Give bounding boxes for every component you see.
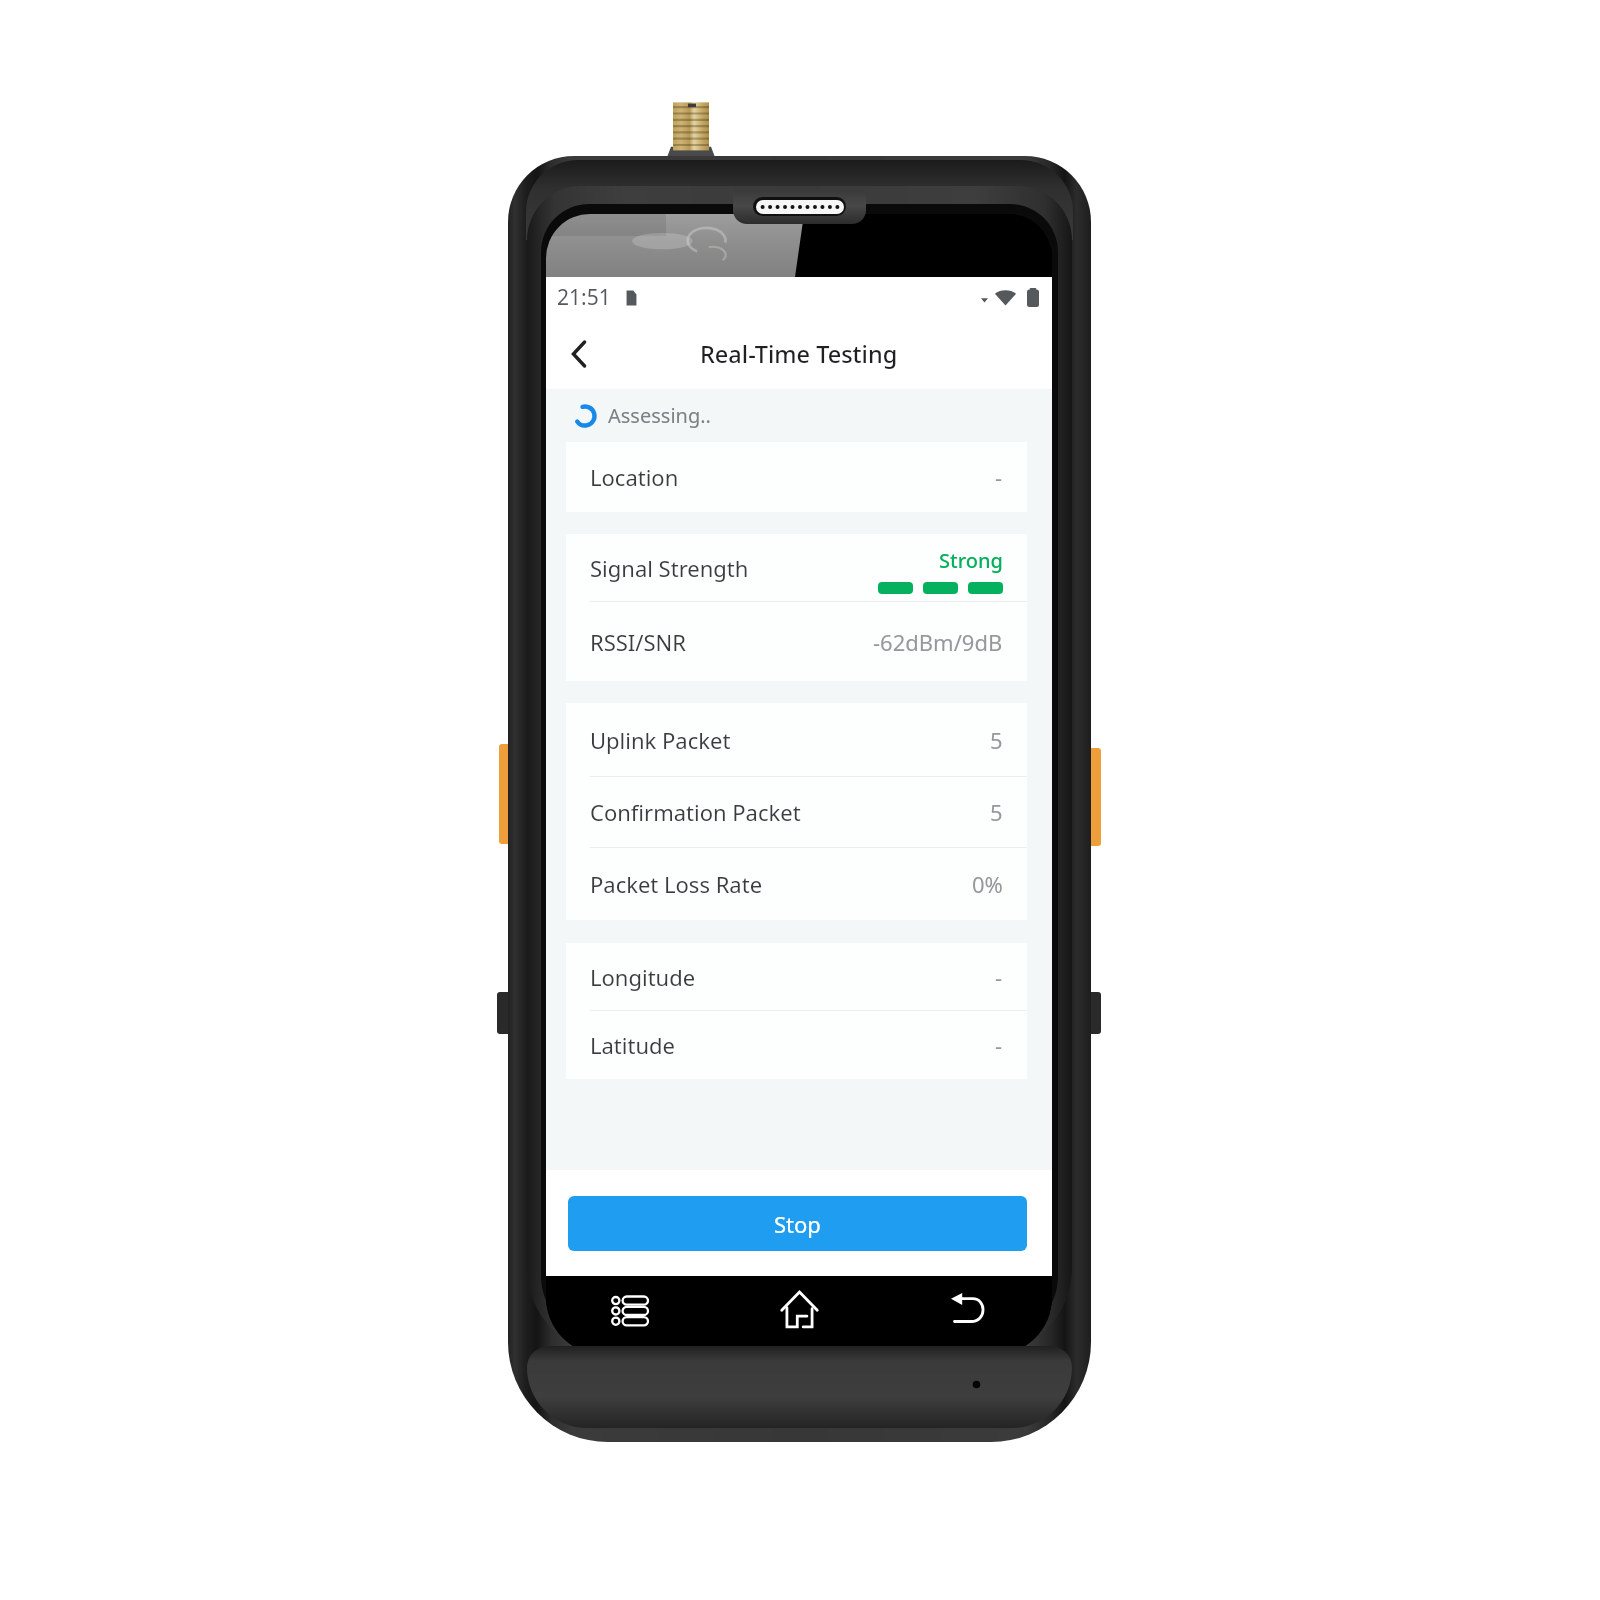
button[interactable]: Signal Strength [566, 534, 1027, 601]
button[interactable]: Back [939, 1279, 997, 1337]
button[interactable]: Stop [568, 1196, 1027, 1251]
staticText: Real-Time Testing [700, 338, 898, 370]
staticText: Assessing.. [608, 402, 711, 429]
staticText: Strong [939, 547, 1003, 574]
button[interactable]: Latitude [566, 1011, 1027, 1079]
button[interactable]: Longitude [566, 943, 1027, 1010]
staticText: Packet Loss Rate [590, 869, 763, 899]
button[interactable]: Back [553, 328, 605, 380]
button[interactable]: Uplink Packet [566, 703, 1027, 776]
staticText: 5 [990, 725, 1003, 755]
staticText: Longitude [590, 962, 696, 992]
staticText: Signal Strength [590, 553, 749, 583]
staticText: -62dBm/9dB [873, 627, 1003, 657]
button[interactable]: Location [566, 442, 1027, 512]
button[interactable]: RSSI/SNR [566, 602, 1027, 681]
staticText: 5 [990, 797, 1003, 827]
staticText: Location [590, 462, 679, 492]
button[interactable]: Recent apps [601, 1281, 659, 1339]
staticText: Latitude [590, 1030, 675, 1060]
button[interactable]: Home [770, 1280, 828, 1338]
staticText: - [995, 962, 1003, 992]
staticText: RSSI/SNR [590, 627, 686, 657]
staticText: - [995, 462, 1003, 492]
staticText: Stop [774, 1209, 821, 1239]
staticText: Confirmation Packet [590, 797, 801, 827]
button[interactable]: Confirmation Packet [566, 777, 1027, 847]
staticText: Uplink Packet [590, 725, 731, 755]
staticText: 0% [972, 869, 1003, 899]
button[interactable]: Packet Loss Rate [566, 848, 1027, 920]
staticText: 21:51 [557, 283, 611, 312]
staticText: - [995, 1030, 1003, 1060]
